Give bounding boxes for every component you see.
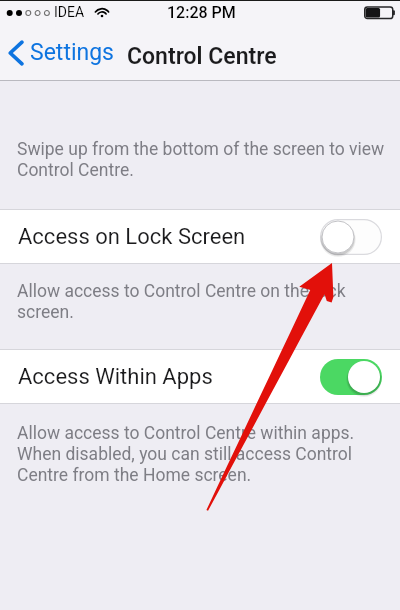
button[interactable]: Access on Lock Screen [0,209,400,264]
button[interactable]: Toggle on [320,357,382,397]
button[interactable]: Settings [4,35,120,70]
button[interactable]: Toggle off [320,217,382,257]
staticText: Swipe up from the bottom of the screen t… [17,139,385,181]
staticText: Access on Lock Screen [18,224,246,250]
staticText: Settings [30,39,114,66]
staticText: 12:28 PM [167,3,236,22]
staticText: Access Within Apps [18,364,213,390]
staticText: Allow access to Control Centre on the lo… [17,281,346,323]
button[interactable]: Access Within Apps [0,349,400,404]
staticText: Control Centre [127,43,277,70]
staticText: IDEA [54,4,85,20]
staticText: Allow access to Control Centre within ap… [17,423,355,486]
